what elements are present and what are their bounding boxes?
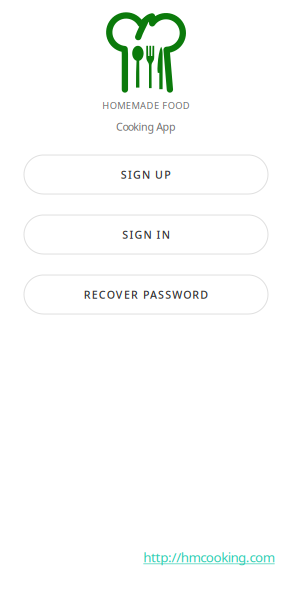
- button[interactable]: RECOVER PASSWORD: [24, 275, 268, 314]
- staticText: http://hmcooking.com: [143, 548, 275, 566]
- staticText: RECOVER PASSWORD: [84, 287, 208, 302]
- staticText: Cooking App: [116, 119, 176, 134]
- button[interactable]: http://hmcooking.com: [129, 550, 289, 564]
- button[interactable]: SIGN IN: [24, 215, 268, 254]
- button[interactable]: SIGN UP: [24, 155, 268, 194]
- staticText: SIGN IN: [122, 227, 170, 242]
- staticText: SIGN UP: [121, 167, 171, 182]
- staticText: HOMEMADE FOOD: [102, 99, 190, 112]
